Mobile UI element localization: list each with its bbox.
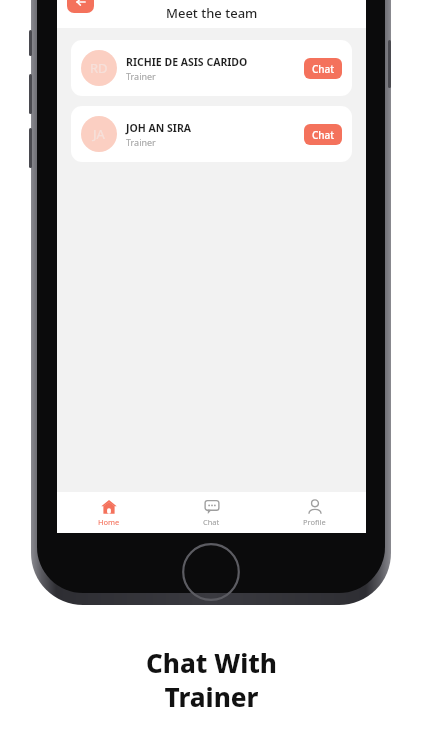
button[interactable]: JA — [71, 106, 352, 162]
staticText: Trainer — [126, 70, 156, 82]
staticText: Meet the team — [166, 4, 258, 22]
staticText: Chat — [312, 62, 335, 76]
staticText: JA — [93, 125, 105, 143]
staticText: JOH AN SIRA — [126, 121, 192, 135]
button[interactable]: Home — [57, 492, 160, 533]
staticText: Home — [98, 517, 120, 527]
staticText: Trainer — [126, 136, 156, 148]
staticText: Chat — [203, 517, 220, 527]
button[interactable]: Back — [67, 0, 94, 13]
staticText: RICHIE DE ASIS CARIDO — [126, 55, 248, 69]
staticText: Chat — [312, 128, 335, 142]
button[interactable]: Chat — [304, 124, 342, 145]
button[interactable]: Profile — [263, 492, 366, 533]
staticText: Chat With Trainer — [146, 645, 277, 714]
button[interactable]: RD — [71, 40, 352, 96]
button[interactable]: Chat — [304, 58, 342, 79]
staticText: Profile — [303, 517, 326, 527]
staticText: RD — [90, 59, 108, 77]
button[interactable]: Chat — [160, 492, 263, 533]
